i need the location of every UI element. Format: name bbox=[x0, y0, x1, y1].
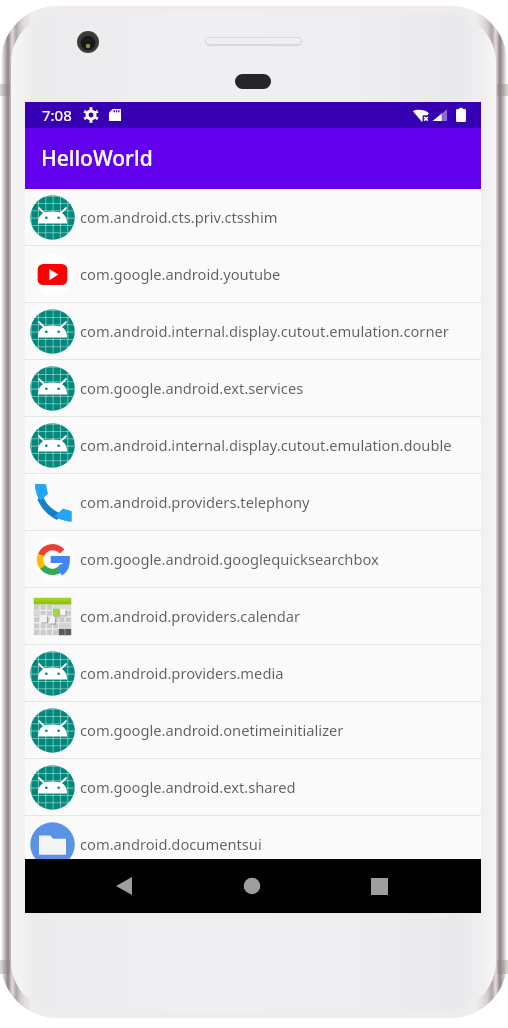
button[interactable]: Back bbox=[96, 859, 152, 913]
button[interactable]: Recent apps bbox=[351, 859, 407, 913]
staticText: com.android.documentsui bbox=[80, 834, 262, 854]
staticText: com.google.android.ext.services bbox=[80, 378, 304, 398]
button[interactable]: com.google.android.ext.services bbox=[25, 360, 481, 416]
button[interactable]: com.android.cts.priv.ctsshim bbox=[25, 189, 481, 245]
staticText: com.android.cts.priv.ctsshim bbox=[80, 207, 278, 227]
button[interactable]: com.android.internal.display.cutout.emul… bbox=[25, 417, 481, 473]
staticText: com.android.providers.calendar bbox=[80, 606, 301, 626]
staticText: com.google.android.youtube bbox=[80, 264, 281, 284]
staticText: com.android.internal.display.cutout.emul… bbox=[80, 321, 449, 341]
button[interactable]: com.google.android.youtube bbox=[25, 246, 481, 302]
staticText: com.google.android.onetimeinitializer bbox=[80, 720, 344, 740]
button[interactable]: com.google.android.ext.shared bbox=[25, 759, 481, 815]
button[interactable]: com.android.providers.media bbox=[25, 645, 481, 701]
staticText: com.android.internal.display.cutout.emul… bbox=[80, 435, 452, 455]
staticText: com.google.android.ext.shared bbox=[80, 777, 296, 797]
button[interactable]: Home bbox=[224, 859, 280, 913]
staticText: 7:08 bbox=[42, 105, 72, 125]
staticText: HelloWorld bbox=[41, 144, 153, 173]
button[interactable]: com.google.android.googlequicksearchbox bbox=[25, 531, 481, 587]
button[interactable]: com.android.providers.telephony bbox=[25, 474, 481, 530]
button[interactable]: HelloWorld bbox=[25, 128, 481, 189]
button[interactable]: com.android.providers.calendar bbox=[25, 588, 481, 644]
staticText: com.android.providers.telephony bbox=[80, 492, 310, 512]
button[interactable]: com.android.internal.display.cutout.emul… bbox=[25, 303, 481, 359]
button[interactable]: com.android.documentsui bbox=[25, 816, 481, 872]
staticText: com.android.providers.media bbox=[80, 663, 284, 683]
staticText: com.google.android.googlequicksearchbox bbox=[80, 549, 379, 569]
button[interactable]: com.google.android.onetimeinitializer bbox=[25, 702, 481, 758]
